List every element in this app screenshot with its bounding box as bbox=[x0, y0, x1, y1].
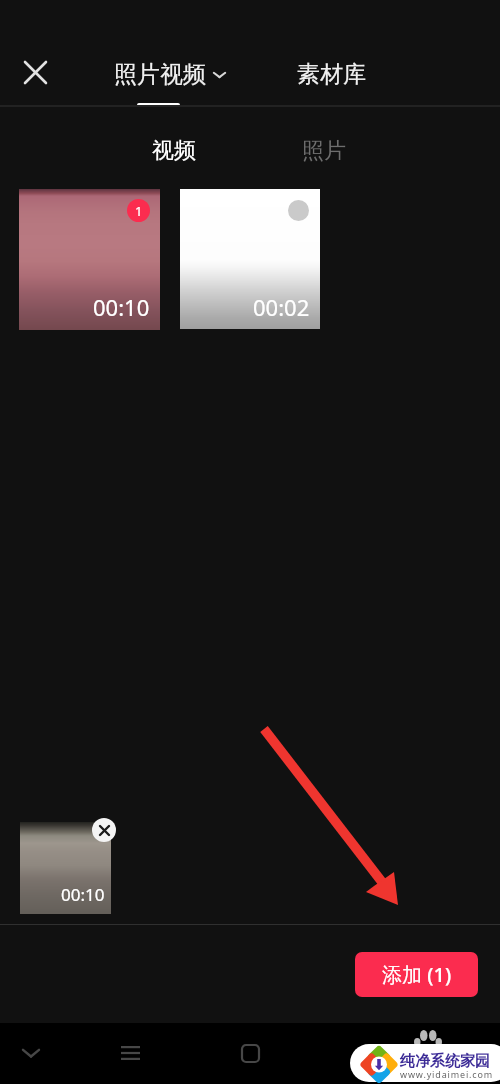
button[interactable]: 添加 (1) bbox=[355, 952, 478, 997]
button[interactable]: 照片 bbox=[289, 129, 359, 173]
staticText: 00:02 bbox=[253, 292, 310, 322]
button[interactable]: 视频 bbox=[139, 129, 209, 173]
staticText: 照片 bbox=[302, 137, 346, 165]
button[interactable]: Close bbox=[13, 50, 57, 94]
staticText: 视频 bbox=[152, 137, 196, 165]
staticText: 00:10 bbox=[61, 883, 105, 906]
staticText: 00:10 bbox=[93, 292, 150, 322]
staticText: 照片视频 bbox=[114, 60, 206, 89]
button[interactable]: Remove clip bbox=[92, 818, 116, 842]
staticText: www.yidaimei.com bbox=[400, 1068, 494, 1080]
button[interactable]: Back bbox=[8, 1030, 54, 1076]
button[interactable]: 00:02 bbox=[180, 189, 320, 329]
button[interactable]: Menu bbox=[107, 1030, 153, 1076]
button[interactable]: 照片视频 bbox=[107, 50, 231, 98]
staticText: 纯净系统家园 bbox=[400, 1052, 490, 1071]
button[interactable]: 00:10 bbox=[20, 822, 111, 914]
button[interactable]: Home bbox=[227, 1030, 273, 1076]
button[interactable]: 1 bbox=[19, 189, 160, 330]
button[interactable]: 素材库 bbox=[288, 50, 374, 98]
staticText: 添加 (1) bbox=[382, 961, 452, 988]
staticText: 1 bbox=[135, 202, 143, 220]
staticText: 素材库 bbox=[297, 60, 366, 89]
